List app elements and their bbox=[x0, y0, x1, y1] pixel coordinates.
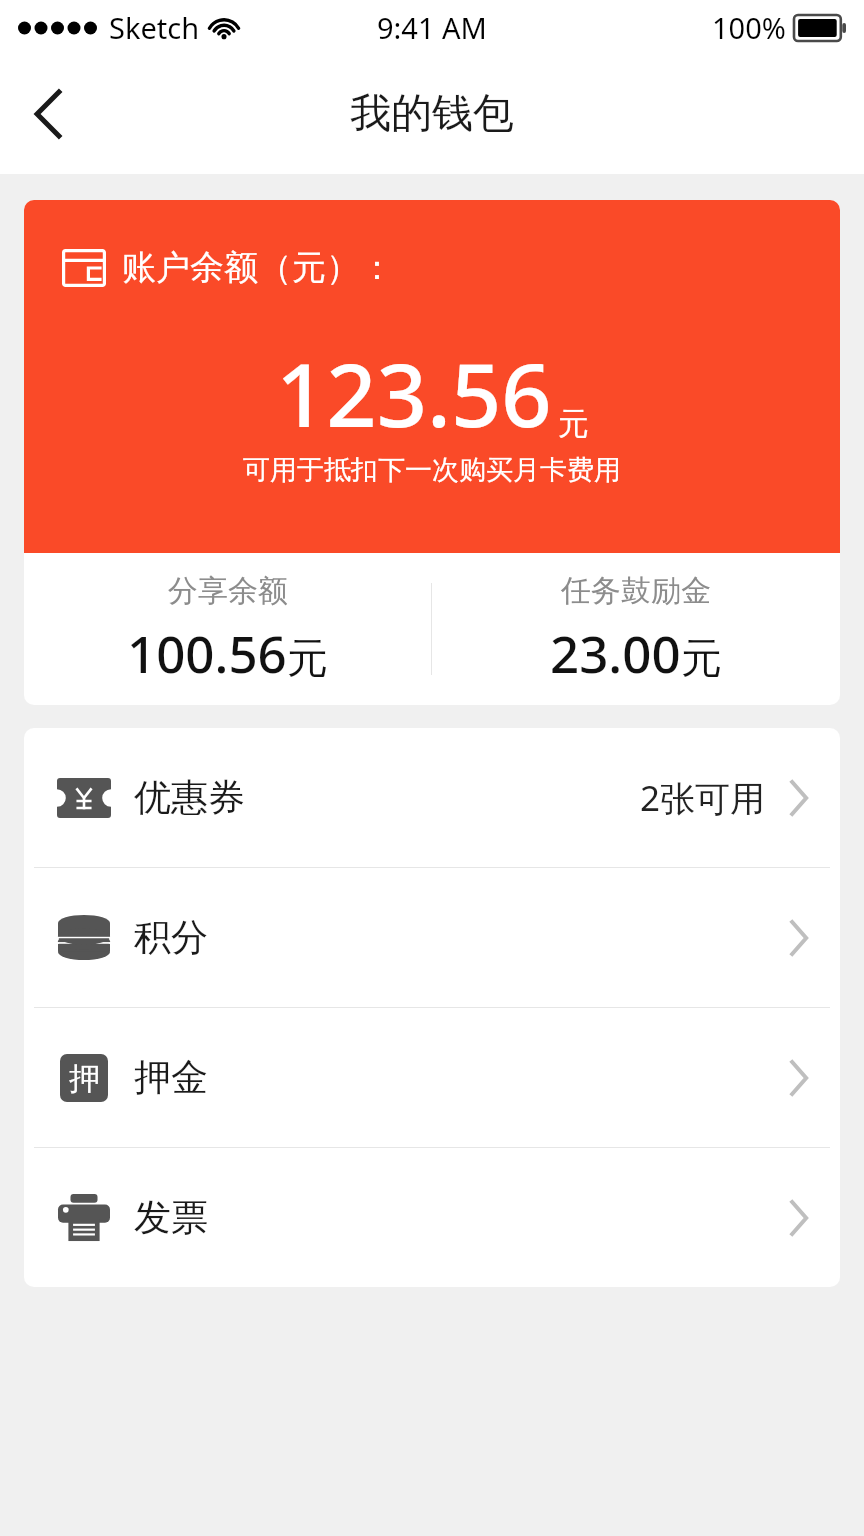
button[interactable]: 发票 bbox=[24, 1148, 840, 1287]
staticText: 账户余额（元）： bbox=[122, 246, 394, 289]
staticText: 押金 bbox=[134, 1054, 208, 1101]
staticText: 100% bbox=[712, 8, 786, 47]
button[interactable]: 押 bbox=[24, 1008, 840, 1147]
staticText: 123.56 bbox=[276, 333, 552, 453]
button[interactable]: 优惠券 bbox=[24, 728, 840, 867]
staticText: 我的钱包 bbox=[350, 88, 514, 140]
button[interactable]: Back bbox=[0, 66, 96, 162]
button[interactable]: 任务鼓励金 bbox=[432, 572, 840, 687]
staticText: 可用于抵扣下一次购买月卡费用 bbox=[243, 453, 621, 487]
staticText: 押 bbox=[69, 1059, 100, 1098]
staticText: 23.00 bbox=[550, 618, 681, 687]
staticText: Sketch bbox=[109, 8, 200, 47]
staticText: 100.56 bbox=[127, 618, 287, 687]
staticText: 分享余额 bbox=[168, 572, 288, 610]
button[interactable]: 分享余额 bbox=[24, 572, 431, 687]
staticText: 积分 bbox=[134, 914, 208, 961]
staticText: 元 bbox=[287, 633, 328, 685]
staticText: 元 bbox=[681, 633, 722, 685]
staticText: 发票 bbox=[134, 1194, 208, 1241]
staticText: 9:41 AM bbox=[377, 8, 487, 47]
staticText: 2张可用 bbox=[640, 774, 766, 822]
button[interactable]: 积分 bbox=[24, 868, 840, 1007]
staticText: 优惠券 bbox=[134, 774, 245, 821]
staticText: 任务鼓励金 bbox=[561, 572, 711, 610]
staticText: 元 bbox=[558, 404, 589, 443]
